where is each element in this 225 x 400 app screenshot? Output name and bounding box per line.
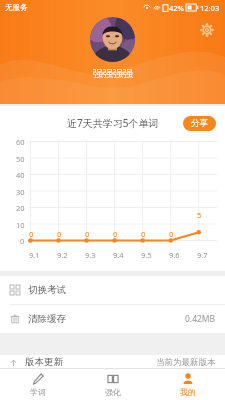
staticText: 0 bbox=[57, 229, 62, 239]
staticText: 0 bbox=[141, 229, 146, 239]
staticText: 清除缓存 bbox=[28, 313, 66, 325]
staticText: 0.42MB bbox=[185, 313, 216, 325]
staticText: 9.6 bbox=[169, 250, 180, 260]
staticText: 30 bbox=[16, 187, 25, 197]
staticText: 5 bbox=[197, 210, 202, 220]
staticText: 无服务 bbox=[5, 3, 28, 12]
button[interactable]: 清除缓存 bbox=[0, 305, 225, 333]
staticText: 分享 bbox=[191, 118, 208, 129]
button[interactable]: 切换考试 bbox=[0, 276, 225, 304]
staticText: 9.2 bbox=[57, 250, 68, 260]
staticText: 9.3 bbox=[85, 250, 96, 260]
button[interactable]: Settings bbox=[196, 19, 218, 41]
staticText: 9.5 bbox=[141, 250, 152, 260]
button[interactable]: 版本更新 bbox=[0, 355, 225, 368]
staticText: 0 bbox=[169, 229, 174, 239]
staticText: 60 bbox=[16, 137, 25, 147]
button[interactable]: 强强强强 bbox=[90, 17, 135, 80]
staticText: 强强强强 bbox=[93, 67, 133, 80]
staticText: 学词 bbox=[30, 387, 46, 397]
staticText: 版本更新 bbox=[25, 356, 63, 368]
staticText: 40 bbox=[16, 170, 25, 180]
staticText: 当前为最新版本 bbox=[156, 357, 216, 368]
staticText: 切换考试 bbox=[28, 284, 66, 296]
staticText: 我的 bbox=[180, 387, 196, 397]
staticText: 0 bbox=[85, 229, 90, 239]
button[interactable]: 强化 bbox=[75, 369, 150, 400]
staticText: 9.4 bbox=[113, 250, 124, 260]
staticText: 12:03 bbox=[200, 3, 220, 13]
staticText: 0 bbox=[29, 229, 34, 239]
staticText: 0 bbox=[20, 236, 25, 246]
staticText: 强化 bbox=[105, 387, 121, 397]
staticText: 近7天共学习5个单词 bbox=[67, 116, 159, 130]
staticText: 10 bbox=[16, 220, 25, 230]
staticText: 42% bbox=[169, 3, 184, 13]
staticText: 50 bbox=[16, 154, 25, 164]
button[interactable]: 分享 bbox=[183, 116, 216, 131]
staticText: 0 bbox=[113, 229, 118, 239]
staticText: 9.7 bbox=[197, 250, 208, 260]
button[interactable]: 我的 bbox=[150, 369, 225, 400]
staticText: 20 bbox=[16, 203, 25, 213]
staticText: 9.1 bbox=[29, 250, 40, 260]
button[interactable]: 学词 bbox=[0, 369, 75, 400]
